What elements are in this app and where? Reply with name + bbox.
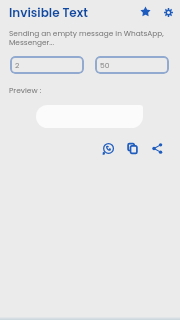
button[interactable]: 2 bbox=[10, 56, 84, 74]
button[interactable]: Share bbox=[148, 139, 167, 158]
button[interactable]: Copy bbox=[123, 139, 142, 158]
staticText: 50 bbox=[100, 60, 110, 70]
staticText: 2 bbox=[15, 60, 20, 70]
button[interactable]: 50 bbox=[95, 56, 169, 74]
button[interactable]: Send to WhatsApp bbox=[98, 139, 117, 158]
button[interactable]: Favorite bbox=[135, 1, 155, 21]
staticText: Invisible Text bbox=[9, 4, 88, 21]
staticText: Sending an empty message in WhatsApp, Me… bbox=[9, 28, 164, 48]
staticText: Preview : bbox=[9, 85, 42, 95]
button[interactable]: Settings bbox=[158, 2, 178, 22]
